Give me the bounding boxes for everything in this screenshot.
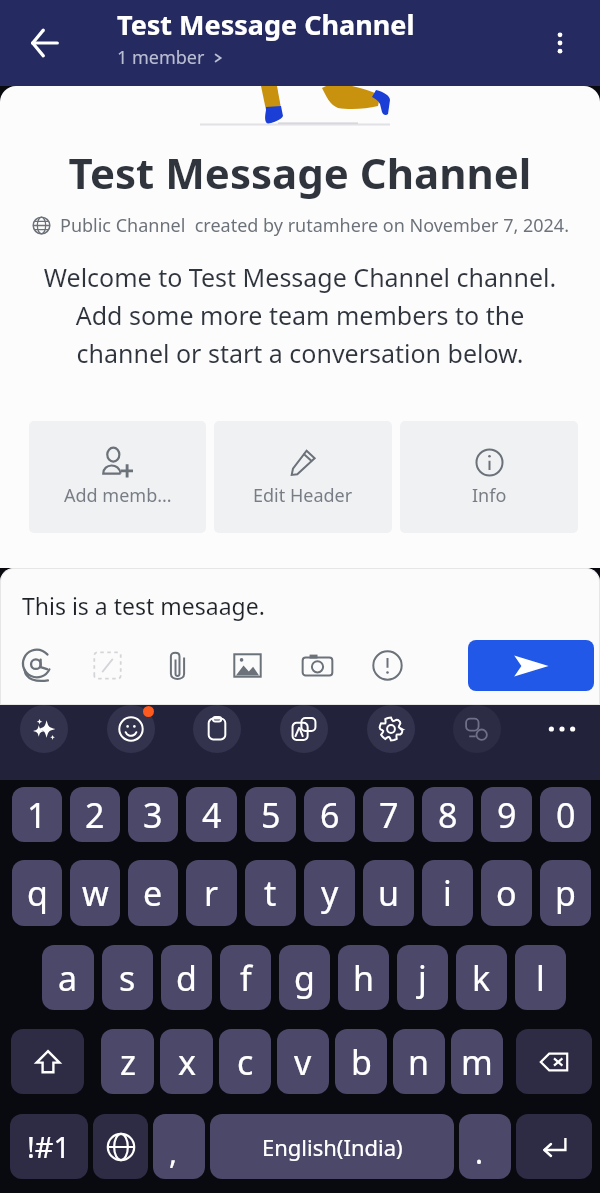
button[interactable]: 8 bbox=[422, 787, 473, 842]
staticText: t bbox=[264, 870, 277, 916]
button[interactable]: l bbox=[515, 945, 566, 1010]
button[interactable]: i bbox=[422, 860, 473, 926]
staticText: Test Message Channel bbox=[0, 144, 600, 201]
button[interactable]: Language bbox=[93, 1114, 148, 1179]
button[interactable]: 2 bbox=[70, 787, 120, 842]
button[interactable]: f bbox=[220, 945, 271, 1010]
button[interactable]: s bbox=[102, 945, 153, 1010]
button[interactable]: Settings bbox=[367, 705, 415, 753]
button[interactable]: Voice translate bbox=[453, 705, 501, 753]
staticText: p bbox=[555, 870, 576, 916]
button[interactable]: 6 bbox=[304, 787, 355, 842]
staticText: x bbox=[178, 1039, 196, 1085]
button[interactable]: More bbox=[540, 707, 584, 751]
button[interactable]: r bbox=[186, 860, 237, 926]
staticText: 2 bbox=[85, 792, 105, 838]
staticText: 6 bbox=[320, 792, 340, 838]
staticText: v bbox=[294, 1039, 312, 1085]
button[interactable]: Magic compose bbox=[20, 705, 68, 753]
staticText: 1 member bbox=[117, 45, 205, 70]
button[interactable]: h bbox=[338, 945, 389, 1010]
staticText: k bbox=[472, 955, 491, 1001]
button[interactable]: y bbox=[304, 860, 355, 926]
staticText: Edit Header bbox=[253, 483, 353, 508]
staticText: Welcome to Test Message Channel channel.… bbox=[34, 260, 566, 370]
staticText: q bbox=[27, 870, 48, 916]
staticText: Info bbox=[472, 483, 507, 508]
button[interactable]: k bbox=[456, 945, 507, 1010]
button[interactable]: Send bbox=[468, 640, 594, 691]
button[interactable]: 9 bbox=[481, 787, 532, 842]
button[interactable]: Emoji bbox=[107, 705, 155, 753]
button[interactable]: 3 bbox=[128, 787, 178, 842]
staticText: l bbox=[536, 955, 545, 1001]
staticText: , bbox=[169, 1132, 178, 1173]
staticText: This is a test mesaage. bbox=[22, 590, 265, 621]
button[interactable]: Actions bbox=[352, 630, 422, 700]
staticText: z bbox=[120, 1039, 136, 1085]
button[interactable]: Attach file bbox=[142, 630, 212, 700]
staticText: b bbox=[351, 1039, 372, 1085]
button[interactable]: n bbox=[393, 1029, 445, 1094]
button[interactable]: q bbox=[12, 860, 62, 926]
staticText: o bbox=[496, 870, 517, 916]
button[interactable]: Info bbox=[400, 421, 578, 533]
button[interactable]: Enter bbox=[516, 1114, 592, 1179]
button[interactable]: Edit Header bbox=[214, 421, 392, 533]
button[interactable]: g bbox=[279, 945, 330, 1010]
button[interactable]: p bbox=[540, 860, 591, 926]
button[interactable]: t bbox=[245, 860, 296, 926]
staticText: u bbox=[378, 870, 400, 916]
button[interactable]: English(India) bbox=[210, 1114, 454, 1179]
button[interactable]: Back bbox=[17, 15, 73, 71]
button[interactable]: 5 bbox=[245, 787, 296, 842]
button[interactable]: More options bbox=[534, 17, 586, 69]
button[interactable]: w bbox=[70, 860, 120, 926]
staticText: e bbox=[143, 870, 163, 916]
button[interactable]: a bbox=[42, 945, 94, 1010]
button[interactable]: j bbox=[397, 945, 448, 1010]
staticText: !#1 bbox=[27, 1127, 71, 1166]
button[interactable]: 4 bbox=[186, 787, 237, 842]
staticText: a bbox=[58, 955, 78, 1001]
staticText: i bbox=[443, 870, 452, 916]
button[interactable]: m bbox=[451, 1029, 503, 1094]
button[interactable]: Translate bbox=[280, 705, 328, 753]
staticText: 3 bbox=[143, 792, 163, 838]
staticText: s bbox=[119, 955, 136, 1001]
button[interactable]: v bbox=[277, 1029, 329, 1094]
button[interactable]: z bbox=[101, 1029, 154, 1094]
button[interactable]: !#1 bbox=[10, 1114, 88, 1179]
staticText: 9 bbox=[497, 792, 517, 838]
button[interactable]: 7 bbox=[363, 787, 414, 842]
button[interactable]: x bbox=[160, 1029, 213, 1094]
button[interactable]: e bbox=[128, 860, 178, 926]
button[interactable]: Camera bbox=[282, 630, 352, 700]
staticText: w bbox=[82, 870, 109, 916]
button[interactable]: Clipboard bbox=[193, 705, 241, 753]
button[interactable]: Gallery bbox=[212, 630, 282, 700]
button[interactable]: 0 bbox=[540, 787, 591, 842]
staticText: n bbox=[408, 1039, 430, 1085]
button[interactable]: Add memb... bbox=[29, 421, 206, 533]
staticText: d bbox=[176, 955, 197, 1001]
button[interactable]: Formatting bbox=[72, 630, 142, 700]
button[interactable]: b bbox=[335, 1029, 387, 1094]
staticText: Public Channel created by rutamhere on N… bbox=[60, 213, 569, 238]
button[interactable]: Mention bbox=[2, 630, 72, 700]
button[interactable]: d bbox=[161, 945, 212, 1010]
staticText: 8 bbox=[438, 792, 458, 838]
button[interactable]: c bbox=[219, 1029, 271, 1094]
button[interactable]: o bbox=[481, 860, 532, 926]
staticText: 4 bbox=[202, 792, 222, 838]
button[interactable]: u bbox=[363, 860, 414, 926]
button[interactable]: 1 bbox=[12, 787, 62, 842]
staticText: j bbox=[418, 955, 427, 1001]
staticText: h bbox=[353, 955, 375, 1001]
button[interactable]: , bbox=[153, 1114, 205, 1179]
button[interactable]: Shift bbox=[11, 1029, 84, 1094]
staticText: g bbox=[294, 955, 315, 1001]
staticText: 1 bbox=[27, 792, 47, 838]
button[interactable]: . bbox=[459, 1114, 511, 1179]
button[interactable]: Backspace bbox=[516, 1029, 592, 1094]
